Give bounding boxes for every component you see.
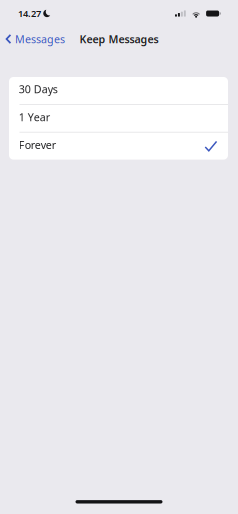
button[interactable]: 1 Year <box>9 105 228 132</box>
staticText: Messages <box>15 32 65 46</box>
button[interactable]: Forever <box>9 133 228 160</box>
staticText: 14.27 <box>18 7 41 20</box>
button[interactable]: Messages <box>0 28 69 50</box>
staticText: 1 Year <box>19 110 50 124</box>
button[interactable]: 30 Days <box>9 77 228 104</box>
staticText: Forever <box>19 138 56 152</box>
staticText: Keep Messages <box>79 32 158 46</box>
staticText: 30 Days <box>19 82 58 96</box>
